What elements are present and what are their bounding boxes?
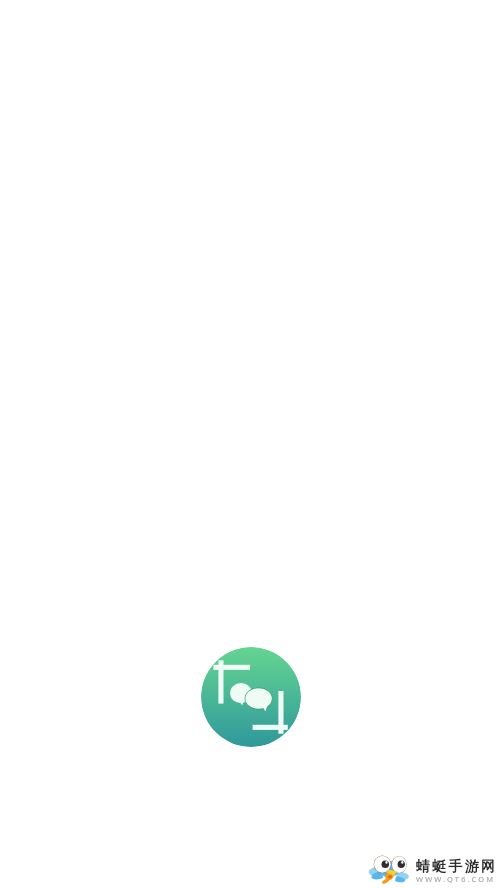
- staticText: 蜻蜓手游网: [415, 858, 496, 876]
- button[interactable]: App logo: [201, 647, 301, 747]
- staticText: WWW.QT6.COM: [416, 874, 496, 884]
